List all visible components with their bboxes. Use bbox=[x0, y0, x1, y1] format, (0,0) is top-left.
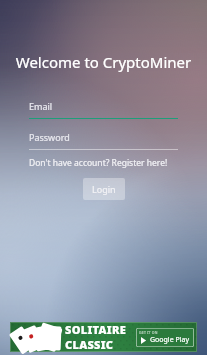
button[interactable]: Don't have account? Register here! bbox=[29, 157, 168, 169]
staticText: Don't have account? Register here! bbox=[29, 157, 168, 169]
button[interactable]: Login bbox=[83, 178, 125, 200]
button[interactable]: Solitaire Classic advertisement bbox=[10, 322, 197, 352]
button[interactable]: GET IT ON bbox=[136, 328, 194, 347]
staticText: GET IT ON bbox=[139, 330, 158, 335]
button[interactable]: Email bbox=[29, 100, 178, 119]
staticText: CLASSIC bbox=[65, 337, 114, 352]
button[interactable]: Password bbox=[29, 131, 178, 150]
staticText: Password bbox=[29, 131, 70, 143]
staticText: SOLITAIRE bbox=[65, 322, 127, 337]
staticText: Email bbox=[29, 100, 53, 112]
staticText: Login bbox=[92, 183, 116, 195]
staticText: Google Play bbox=[150, 335, 189, 345]
staticText: Welcome to CryptoMiner bbox=[0, 52, 207, 72]
